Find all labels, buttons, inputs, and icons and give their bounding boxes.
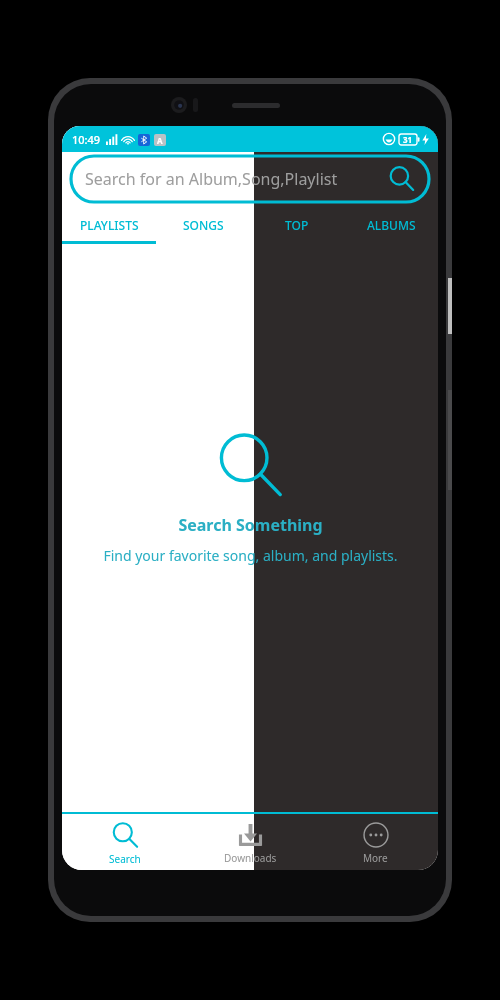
button[interactable]: Downloads — [188, 812, 313, 870]
staticText: Downloads — [224, 851, 277, 865]
button[interactable]: ALBUMS — [344, 206, 438, 244]
staticText: Search for an Album,Song,Playlist — [85, 168, 389, 190]
staticText: Search — [109, 852, 141, 866]
staticText: SONGS — [183, 217, 224, 233]
button[interactable]: Search — [62, 812, 188, 870]
button[interactable]: More — [313, 812, 438, 870]
button[interactable]: PLAYLISTS — [62, 206, 156, 244]
staticText: 31 — [403, 134, 413, 145]
button[interactable]: Search for an Album,Song,Playlist — [71, 156, 429, 202]
staticText: Find your favorite song, album, and play… — [103, 546, 398, 565]
button[interactable]: TOP — [250, 206, 344, 244]
staticText: A — [157, 135, 163, 146]
staticText: Search Something — [178, 514, 323, 536]
button[interactable]: SONGS — [156, 206, 250, 244]
staticText: ALBUMS — [367, 217, 416, 233]
staticText: PLAYLISTS — [80, 217, 139, 233]
staticText: 10:49 — [72, 132, 101, 147]
staticText: TOP — [285, 217, 309, 233]
staticText: More — [363, 851, 388, 865]
